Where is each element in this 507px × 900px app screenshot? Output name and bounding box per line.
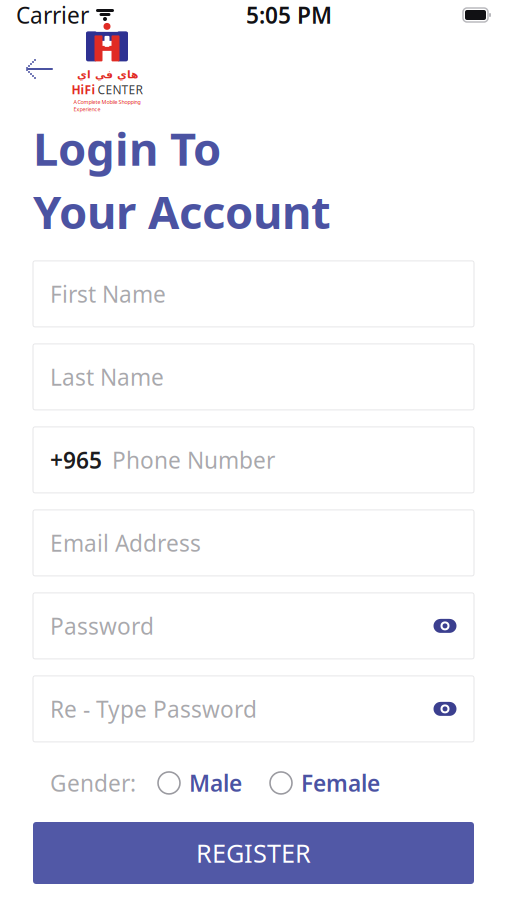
button[interactable]: REGISTER xyxy=(33,822,474,884)
staticText: Login To xyxy=(33,118,221,178)
staticText: Your Account xyxy=(33,181,331,241)
staticText: Re - Type Password xyxy=(50,694,257,724)
button[interactable]: Last Name xyxy=(33,344,474,410)
staticText: REGISTER xyxy=(196,836,311,870)
staticText: هاي في اي xyxy=(76,68,137,80)
staticText: A Complete Mobile Shopping Experience xyxy=(73,98,140,113)
button[interactable]: Password xyxy=(33,593,474,659)
staticText: Female xyxy=(301,768,380,798)
staticText: First Name xyxy=(50,279,166,309)
staticText: Male xyxy=(189,768,242,798)
staticText: Phone Number xyxy=(112,445,275,475)
button[interactable]: First Name xyxy=(33,261,474,327)
staticText: +965 xyxy=(50,445,102,475)
staticText: Last Name xyxy=(50,362,164,392)
button[interactable]: +965 xyxy=(33,427,474,493)
button[interactable]: Email Address xyxy=(33,510,474,576)
button[interactable]: Re - Type Password xyxy=(33,676,474,742)
staticText: CENTER xyxy=(97,81,142,97)
staticText: Password xyxy=(50,611,154,641)
staticText: HiFi xyxy=(71,81,95,97)
staticText: Carrier xyxy=(16,0,89,30)
staticText: Gender: xyxy=(50,768,136,798)
button[interactable]: Back xyxy=(16,45,64,93)
staticText: 5:05 PM xyxy=(246,0,332,30)
staticText: Email Address xyxy=(50,528,201,558)
button[interactable]: Male xyxy=(158,768,242,798)
button[interactable]: Female xyxy=(270,768,380,798)
